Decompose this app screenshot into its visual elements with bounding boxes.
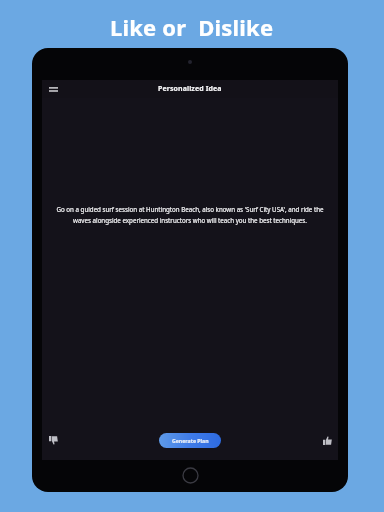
button[interactable]: Open navigation menu <box>45 81 61 97</box>
staticText: Personalized Idea <box>158 84 222 94</box>
button[interactable]: Home <box>182 467 199 484</box>
button[interactable]: Like <box>318 431 336 449</box>
staticText: Go on a guided surf session at Huntingto… <box>50 205 330 224</box>
staticText: Like or Dislike <box>110 12 274 42</box>
button[interactable]: Generate Plan <box>159 433 221 448</box>
button[interactable]: Dislike <box>44 431 62 449</box>
staticText: Generate Plan <box>172 437 209 444</box>
